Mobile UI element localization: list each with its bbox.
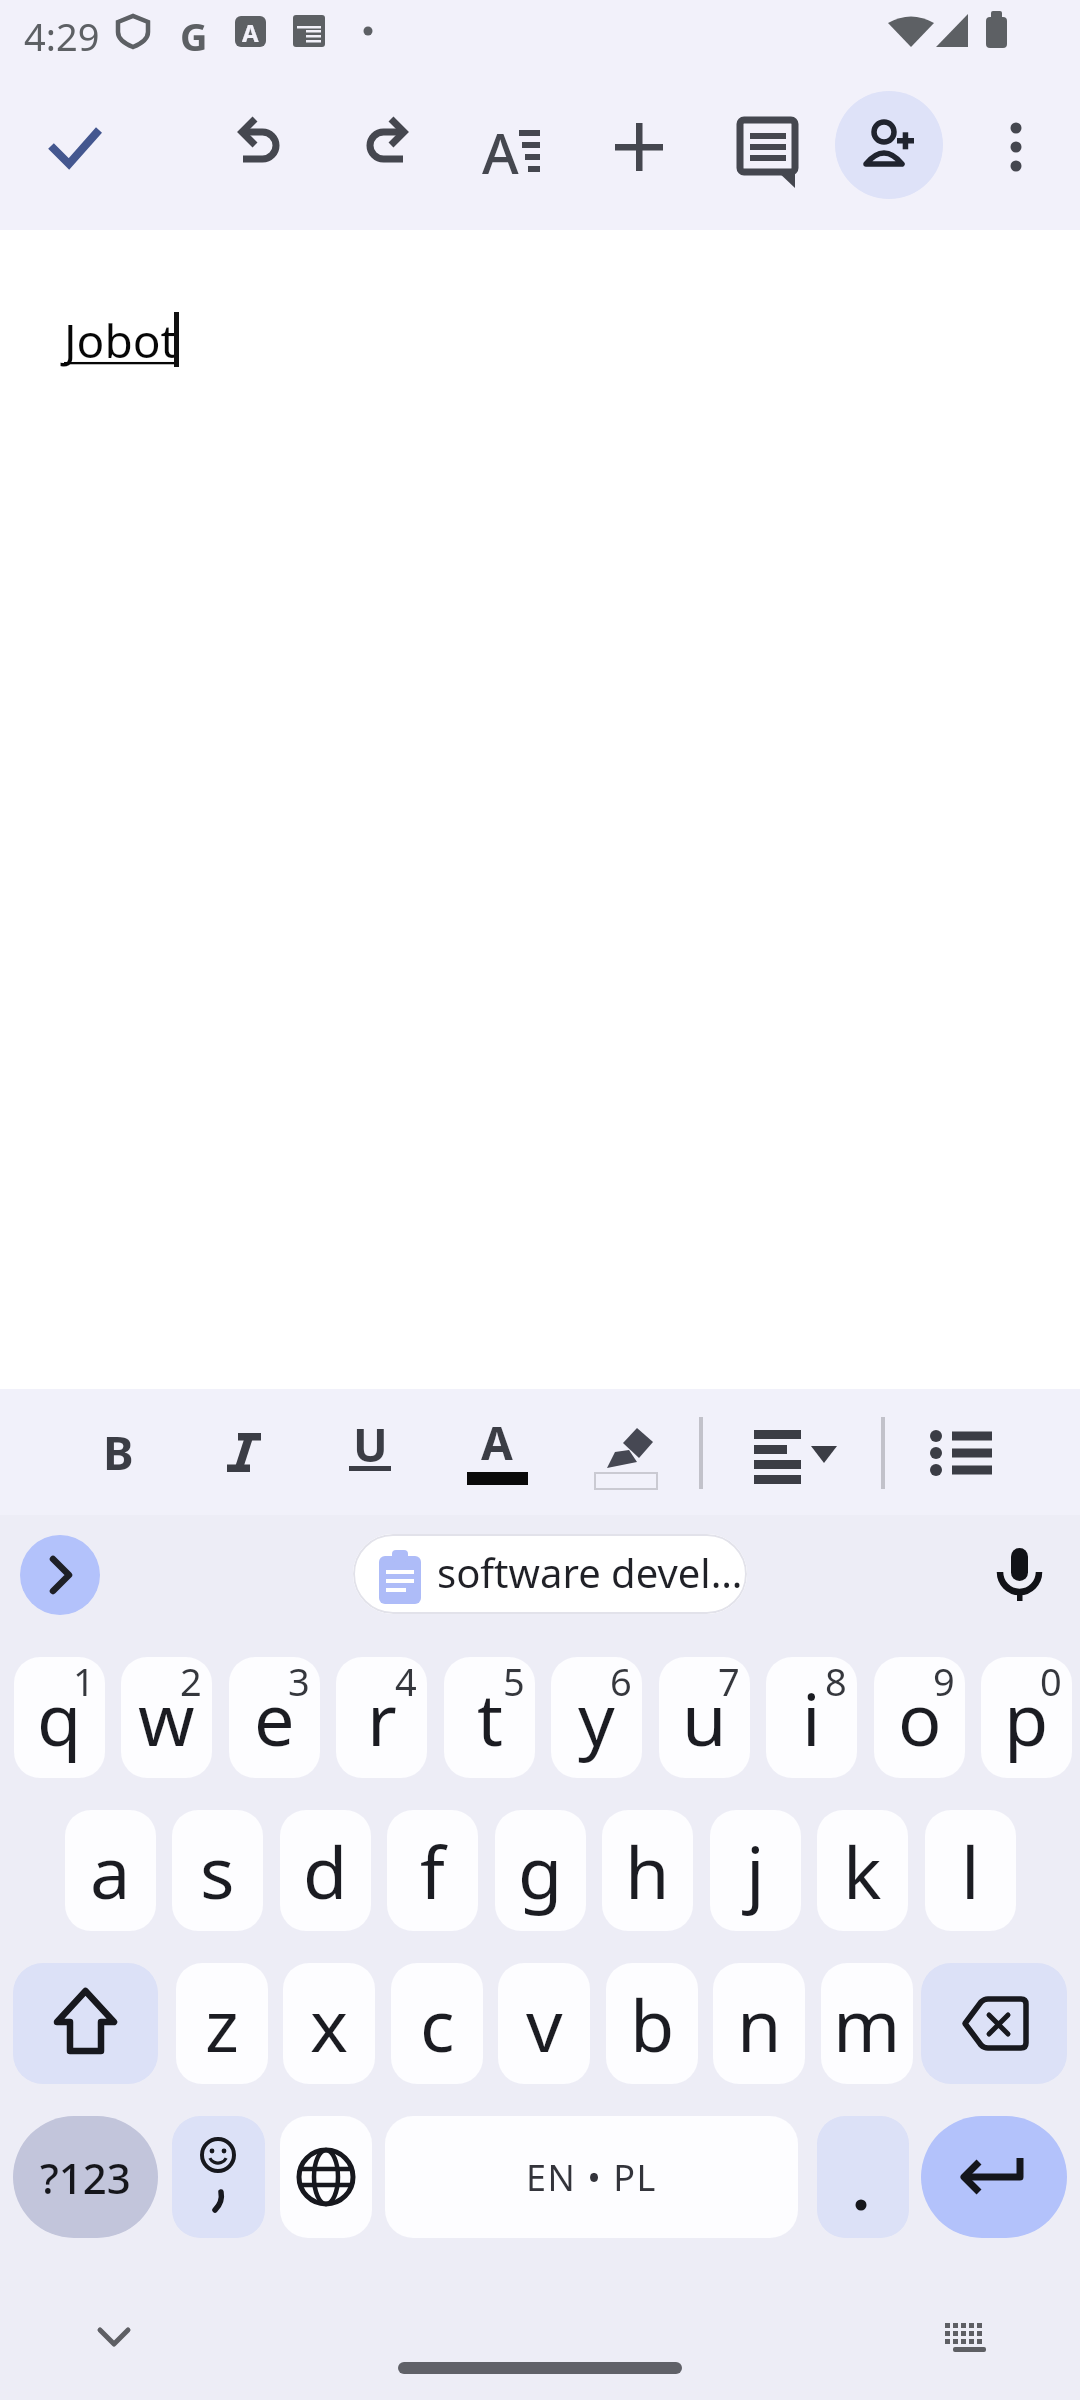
button[interactable]: EN • PL: [385, 2116, 798, 2238]
staticText: k: [843, 1822, 882, 1920]
button[interactable]: j: [710, 1810, 801, 1931]
staticText: q: [37, 1669, 82, 1767]
staticText: c: [420, 1975, 455, 2073]
button[interactable]: [976, 106, 1056, 186]
button[interactable]: [599, 107, 679, 187]
button[interactable]: [20, 1535, 100, 1615]
button[interactable]: h: [602, 1810, 693, 1931]
button[interactable]: p: [981, 1657, 1072, 1778]
button[interactable]: [13, 1963, 158, 2084]
button[interactable]: v: [498, 1963, 590, 2084]
button[interactable]: b: [606, 1963, 698, 2084]
staticText: m: [833, 1975, 901, 2073]
staticText: 5: [503, 1657, 525, 1707]
staticText: 2: [180, 1657, 202, 1707]
staticText: b: [630, 1975, 675, 2073]
staticText: p: [1004, 1669, 1049, 1767]
staticText: EN • PL: [526, 2153, 657, 2202]
button[interactable]: [221, 106, 301, 186]
staticText: h: [625, 1822, 670, 1920]
button[interactable]: software devel…: [353, 1534, 747, 1614]
staticText: r: [367, 1669, 397, 1767]
staticText: B: [103, 1421, 134, 1484]
staticText: software devel…: [437, 1545, 743, 1599]
button[interactable]: ?123: [13, 2116, 158, 2238]
button[interactable]: [930, 2305, 1005, 2365]
staticText: a: [90, 1822, 131, 1920]
button[interactable]: o: [874, 1657, 965, 1778]
button[interactable]: x: [283, 1963, 375, 2084]
button[interactable]: r: [336, 1657, 427, 1778]
button[interactable]: f: [387, 1810, 478, 1931]
staticText: d: [303, 1822, 348, 1920]
staticText: 6: [610, 1657, 632, 1707]
staticText: g: [518, 1822, 563, 1920]
staticText: n: [737, 1975, 782, 2073]
button[interactable]: A: [459, 1410, 535, 1490]
button[interactable]: a: [65, 1810, 156, 1931]
button[interactable]: l: [925, 1810, 1016, 1931]
button[interactable]: g: [495, 1810, 586, 1931]
button[interactable]: [345, 106, 425, 186]
button[interactable]: q: [14, 1657, 105, 1778]
button[interactable]: n: [713, 1963, 805, 2084]
button[interactable]: y: [551, 1657, 642, 1778]
button[interactable]: w: [121, 1657, 212, 1778]
staticText: 4: [395, 1657, 417, 1707]
staticText: e: [254, 1669, 295, 1767]
button[interactable]: U: [332, 1410, 408, 1490]
staticText: ?123: [40, 2149, 131, 2206]
button[interactable]: [921, 1963, 1067, 2084]
staticText: v: [526, 1975, 563, 2073]
button[interactable]: [280, 2116, 372, 2238]
staticText: 8: [825, 1657, 847, 1707]
button[interactable]: u: [659, 1657, 750, 1778]
staticText: A: [482, 114, 519, 190]
button[interactable]: k: [817, 1810, 908, 1931]
button[interactable]: [75, 2305, 150, 2365]
staticText: i: [802, 1669, 821, 1767]
staticText: 0: [1040, 1657, 1062, 1707]
button[interactable]: [817, 2116, 909, 2238]
staticText: s: [200, 1822, 235, 1920]
staticText: G: [180, 10, 208, 54]
staticText: l: [961, 1822, 980, 1920]
staticText: y: [578, 1669, 615, 1767]
button[interactable]: d: [280, 1810, 371, 1931]
staticText: 9: [933, 1657, 955, 1707]
button[interactable]: B: [80, 1414, 156, 1490]
staticText: A: [242, 16, 259, 47]
staticText: z: [205, 1975, 239, 2073]
staticText: x: [310, 1975, 349, 2073]
button[interactable]: s: [172, 1810, 263, 1931]
staticText: w: [138, 1669, 195, 1767]
button[interactable]: [172, 2116, 265, 2238]
staticText: f: [420, 1822, 445, 1920]
button[interactable]: [916, 1410, 1000, 1490]
button[interactable]: m: [821, 1963, 913, 2084]
button[interactable]: [980, 1535, 1060, 1615]
staticText: 4:29: [24, 10, 100, 56]
button[interactable]: e: [229, 1657, 320, 1778]
button[interactable]: c: [391, 1963, 483, 2084]
staticText: Jobot: [64, 309, 178, 372]
staticText: u: [682, 1669, 727, 1767]
button[interactable]: [835, 91, 943, 199]
staticText: 3: [288, 1657, 310, 1707]
staticText: 7: [718, 1657, 740, 1707]
button[interactable]: [745, 1410, 845, 1490]
button[interactable]: [726, 106, 806, 186]
button[interactable]: [205, 1414, 281, 1490]
staticText: j: [746, 1822, 765, 1920]
button[interactable]: A: [470, 106, 560, 186]
staticText: t: [477, 1669, 503, 1767]
button[interactable]: [585, 1410, 665, 1490]
button[interactable]: [921, 2116, 1067, 2238]
button[interactable]: z: [176, 1963, 268, 2084]
button[interactable]: [35, 106, 115, 186]
staticText: U: [353, 1413, 388, 1476]
button[interactable]: i: [766, 1657, 857, 1778]
staticText: A: [481, 1411, 513, 1474]
button[interactable]: t: [444, 1657, 535, 1778]
staticText: o: [898, 1669, 942, 1767]
